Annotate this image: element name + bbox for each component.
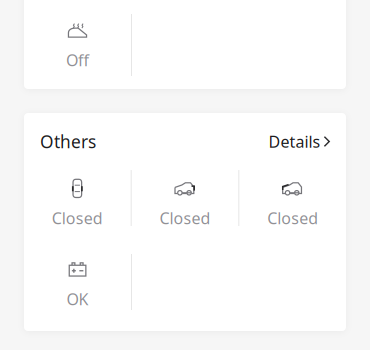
staticText: Off: [66, 49, 89, 71]
staticText: Others: [40, 130, 96, 153]
button[interactable]: Battery, OK: [24, 258, 131, 310]
staticText: OK: [66, 288, 88, 310]
button[interactable]: Details: [269, 131, 330, 152]
staticText: Details: [269, 131, 321, 152]
button[interactable]: Hood, Closed: [239, 177, 346, 229]
staticText: Closed: [267, 207, 318, 229]
button[interactable]: Doors, Closed: [24, 177, 131, 229]
button[interactable]: Trunk, Closed: [132, 177, 238, 229]
staticText: Closed: [52, 207, 103, 229]
staticText: Closed: [159, 207, 210, 229]
button[interactable]: Rear defroster, Off: [24, 19, 131, 71]
